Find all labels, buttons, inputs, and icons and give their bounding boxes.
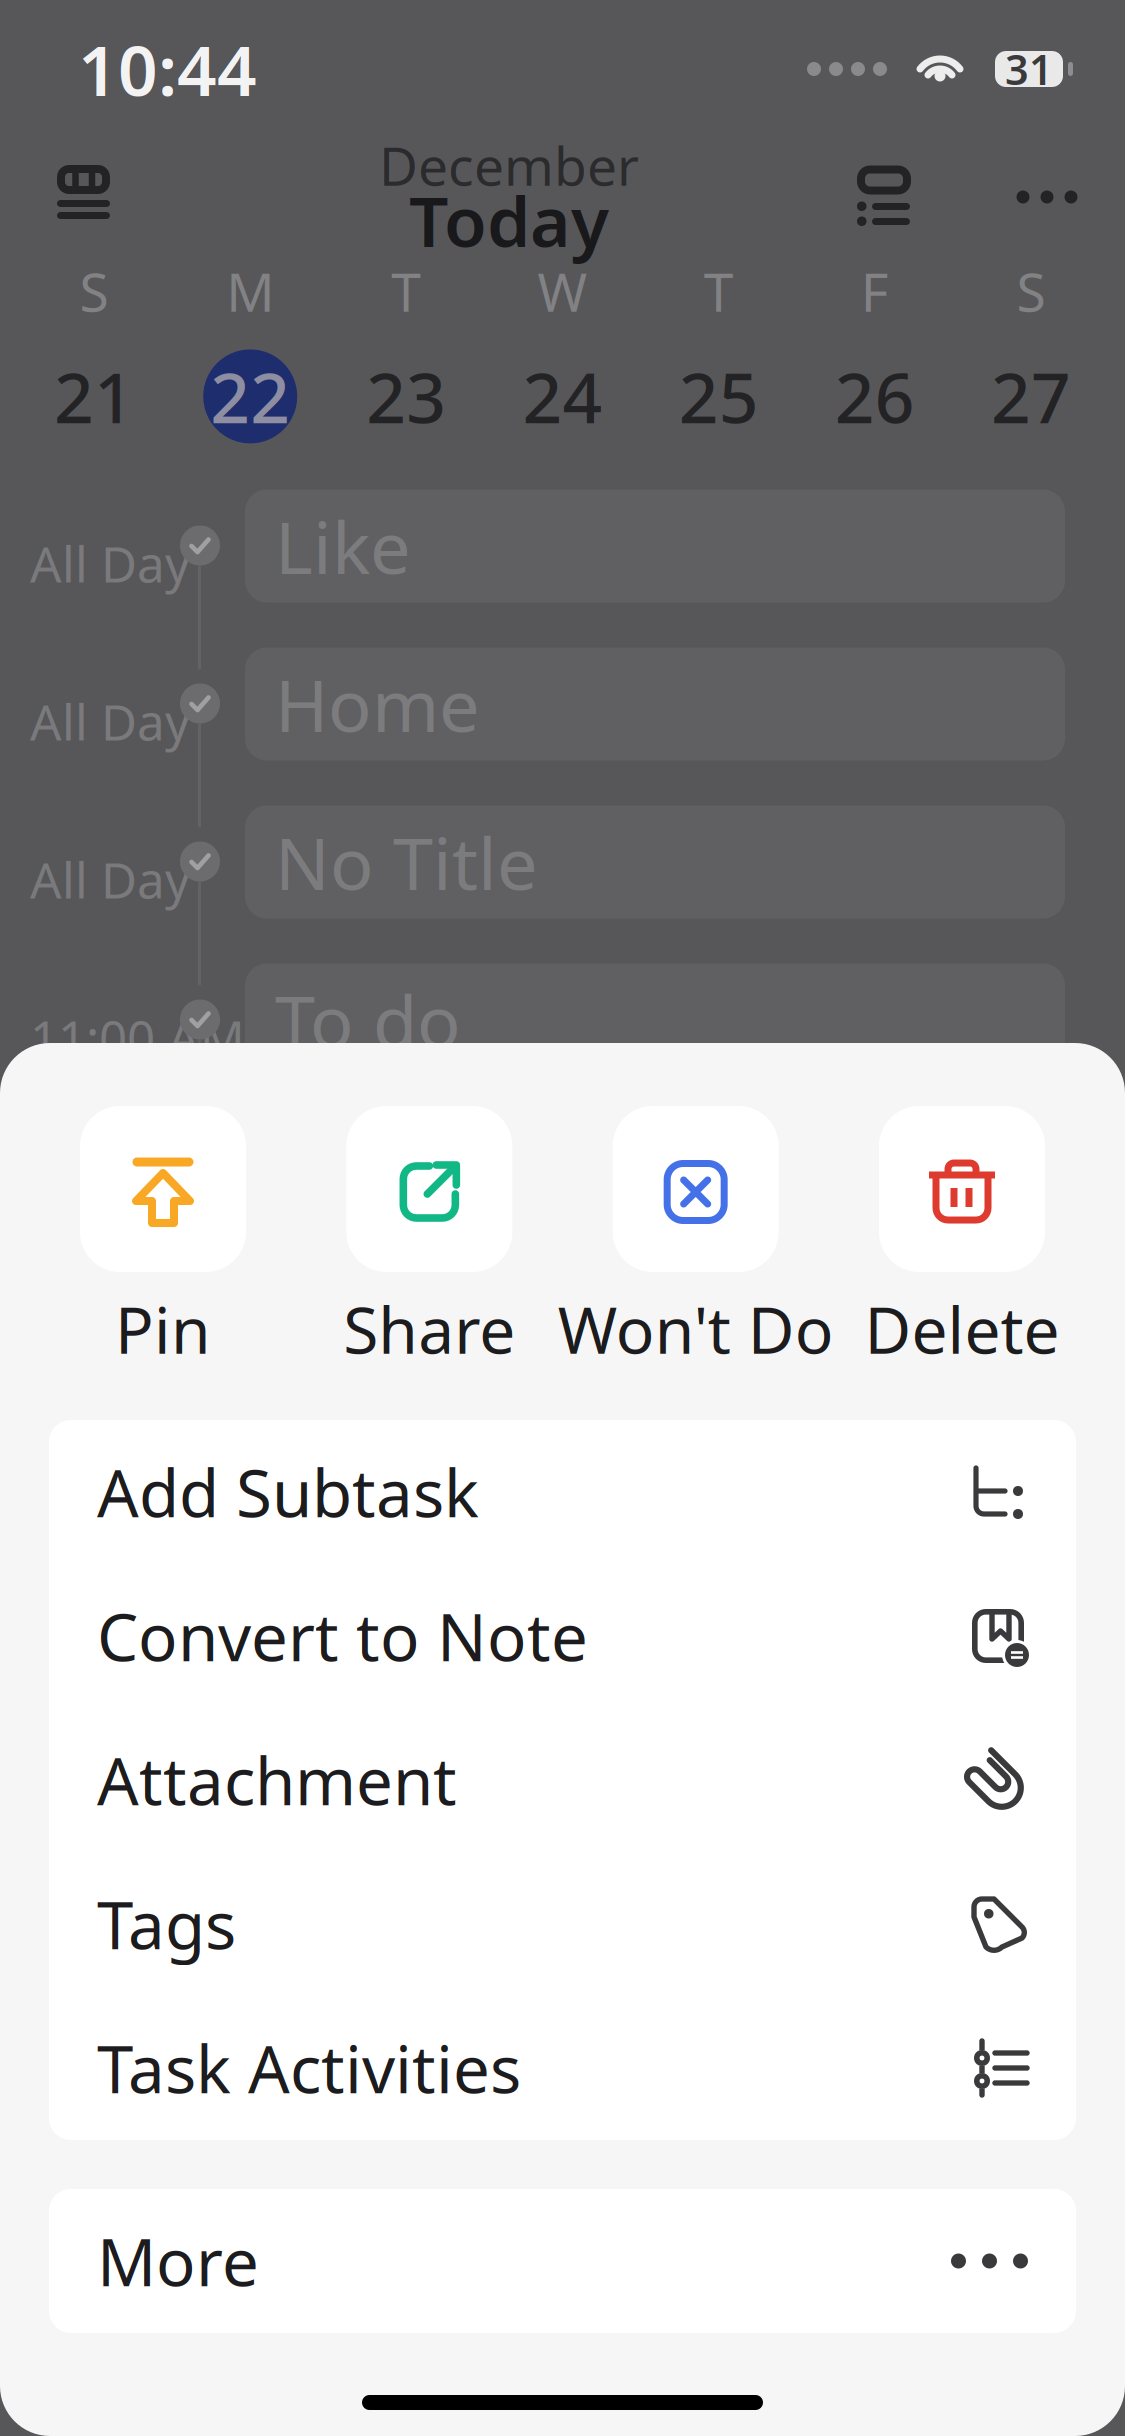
staticText: More (97, 2218, 259, 2304)
button[interactable]: M (172, 256, 328, 444)
staticText: Today (409, 174, 609, 266)
staticText: 24 (522, 350, 602, 442)
button[interactable]: Add Subtask (49, 1420, 1076, 1564)
staticText: W (537, 256, 587, 326)
staticText: 21 (54, 350, 134, 442)
staticText: S (80, 256, 109, 326)
staticText: Home (275, 656, 480, 752)
staticText: December (379, 130, 639, 200)
button[interactable]: Task Activities (49, 1996, 1076, 2140)
staticText: All Day (30, 846, 190, 912)
staticText: T (704, 256, 734, 326)
button[interactable]: Tags (49, 1852, 1076, 1996)
staticText: Attachment (97, 1737, 457, 1823)
staticText: 27 (991, 350, 1071, 442)
staticText: All Day (30, 688, 190, 754)
staticText: Won't Do (558, 1286, 834, 1371)
button[interactable]: Delete (879, 1106, 1045, 1362)
button[interactable]: Pin (80, 1106, 246, 1362)
staticText: F (861, 256, 889, 326)
staticText: No Title (275, 814, 538, 910)
button[interactable]: T (641, 256, 797, 444)
button[interactable]: S (953, 256, 1109, 444)
staticText: T (391, 256, 421, 326)
button[interactable]: T (328, 256, 484, 444)
button[interactable]: F (797, 256, 953, 444)
button[interactable]: More (49, 2189, 1076, 2333)
button[interactable]: Convert to Note (49, 1564, 1076, 1708)
button[interactable]: Attachment (49, 1708, 1076, 1852)
button[interactable]: Calendar view (57, 75, 161, 302)
staticText: 22 (210, 350, 290, 442)
staticText: 11:00 AM (30, 1004, 245, 1070)
staticText: S (1016, 256, 1045, 326)
staticText: Share (343, 1286, 515, 1371)
staticText: 26 (835, 350, 915, 442)
staticText: 31 (1005, 42, 1053, 96)
button[interactable]: W (484, 256, 640, 444)
button[interactable]: More options (1010, 106, 1084, 272)
staticText: Convert to Note (97, 1593, 588, 1679)
button[interactable]: S (16, 256, 172, 444)
staticText: 10:44 (78, 23, 257, 115)
staticText: Like (275, 498, 411, 594)
button[interactable]: Share (346, 1106, 512, 1362)
staticText: Delete (864, 1286, 1059, 1371)
staticText: 23 (366, 350, 446, 442)
staticText: To do (275, 972, 461, 1068)
button[interactable]: List view (857, 78, 911, 299)
button[interactable]: Won't Do (613, 1106, 779, 1362)
staticText: Add Subtask (97, 1449, 479, 1535)
staticText: 25 (679, 350, 759, 442)
staticText: M (226, 256, 274, 326)
staticText: Pin (115, 1286, 211, 1371)
staticText: All Day (30, 530, 190, 596)
staticText: Task Activities (97, 2025, 521, 2111)
staticText: Tags (97, 1881, 236, 1967)
